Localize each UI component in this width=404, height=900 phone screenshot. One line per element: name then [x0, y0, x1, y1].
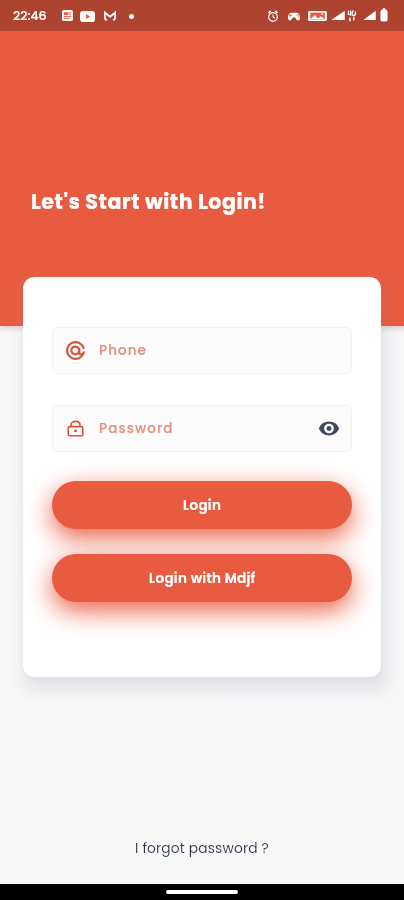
staticText: 22:46	[13, 7, 47, 24]
button[interactable]: Login	[52, 481, 352, 529]
other: Show password	[319, 420, 339, 437]
button[interactable]: Login with Mdjf	[52, 554, 352, 602]
staticText: Login with Mdjf	[149, 569, 256, 588]
staticText: Phone	[99, 341, 147, 360]
staticText: Password	[99, 419, 174, 438]
staticText: I forgot password ?	[135, 839, 269, 858]
staticText: Let's Start with Login!	[31, 187, 266, 216]
button[interactable]: I forgot password ?	[125, 835, 279, 862]
button[interactable]: Password	[52, 405, 352, 452]
button[interactable]: Phone	[52, 327, 352, 374]
staticText: Login	[183, 496, 222, 515]
